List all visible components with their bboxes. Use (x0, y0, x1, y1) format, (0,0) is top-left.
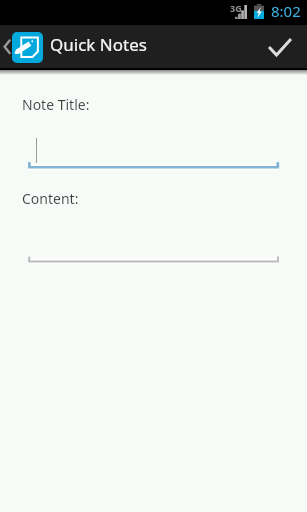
button[interactable]: Content field (23, 231, 285, 271)
button[interactable]: Navigate up (0, 25, 12, 70)
button[interactable]: Save note (259, 25, 307, 70)
staticText: 3G (230, 2, 242, 14)
staticText: Note Title: (22, 95, 90, 114)
staticText: Content: (22, 189, 79, 208)
staticText: 8:02 (271, 1, 301, 21)
button[interactable]: Note Title field (23, 132, 285, 172)
staticText: Quick Notes (50, 33, 147, 56)
